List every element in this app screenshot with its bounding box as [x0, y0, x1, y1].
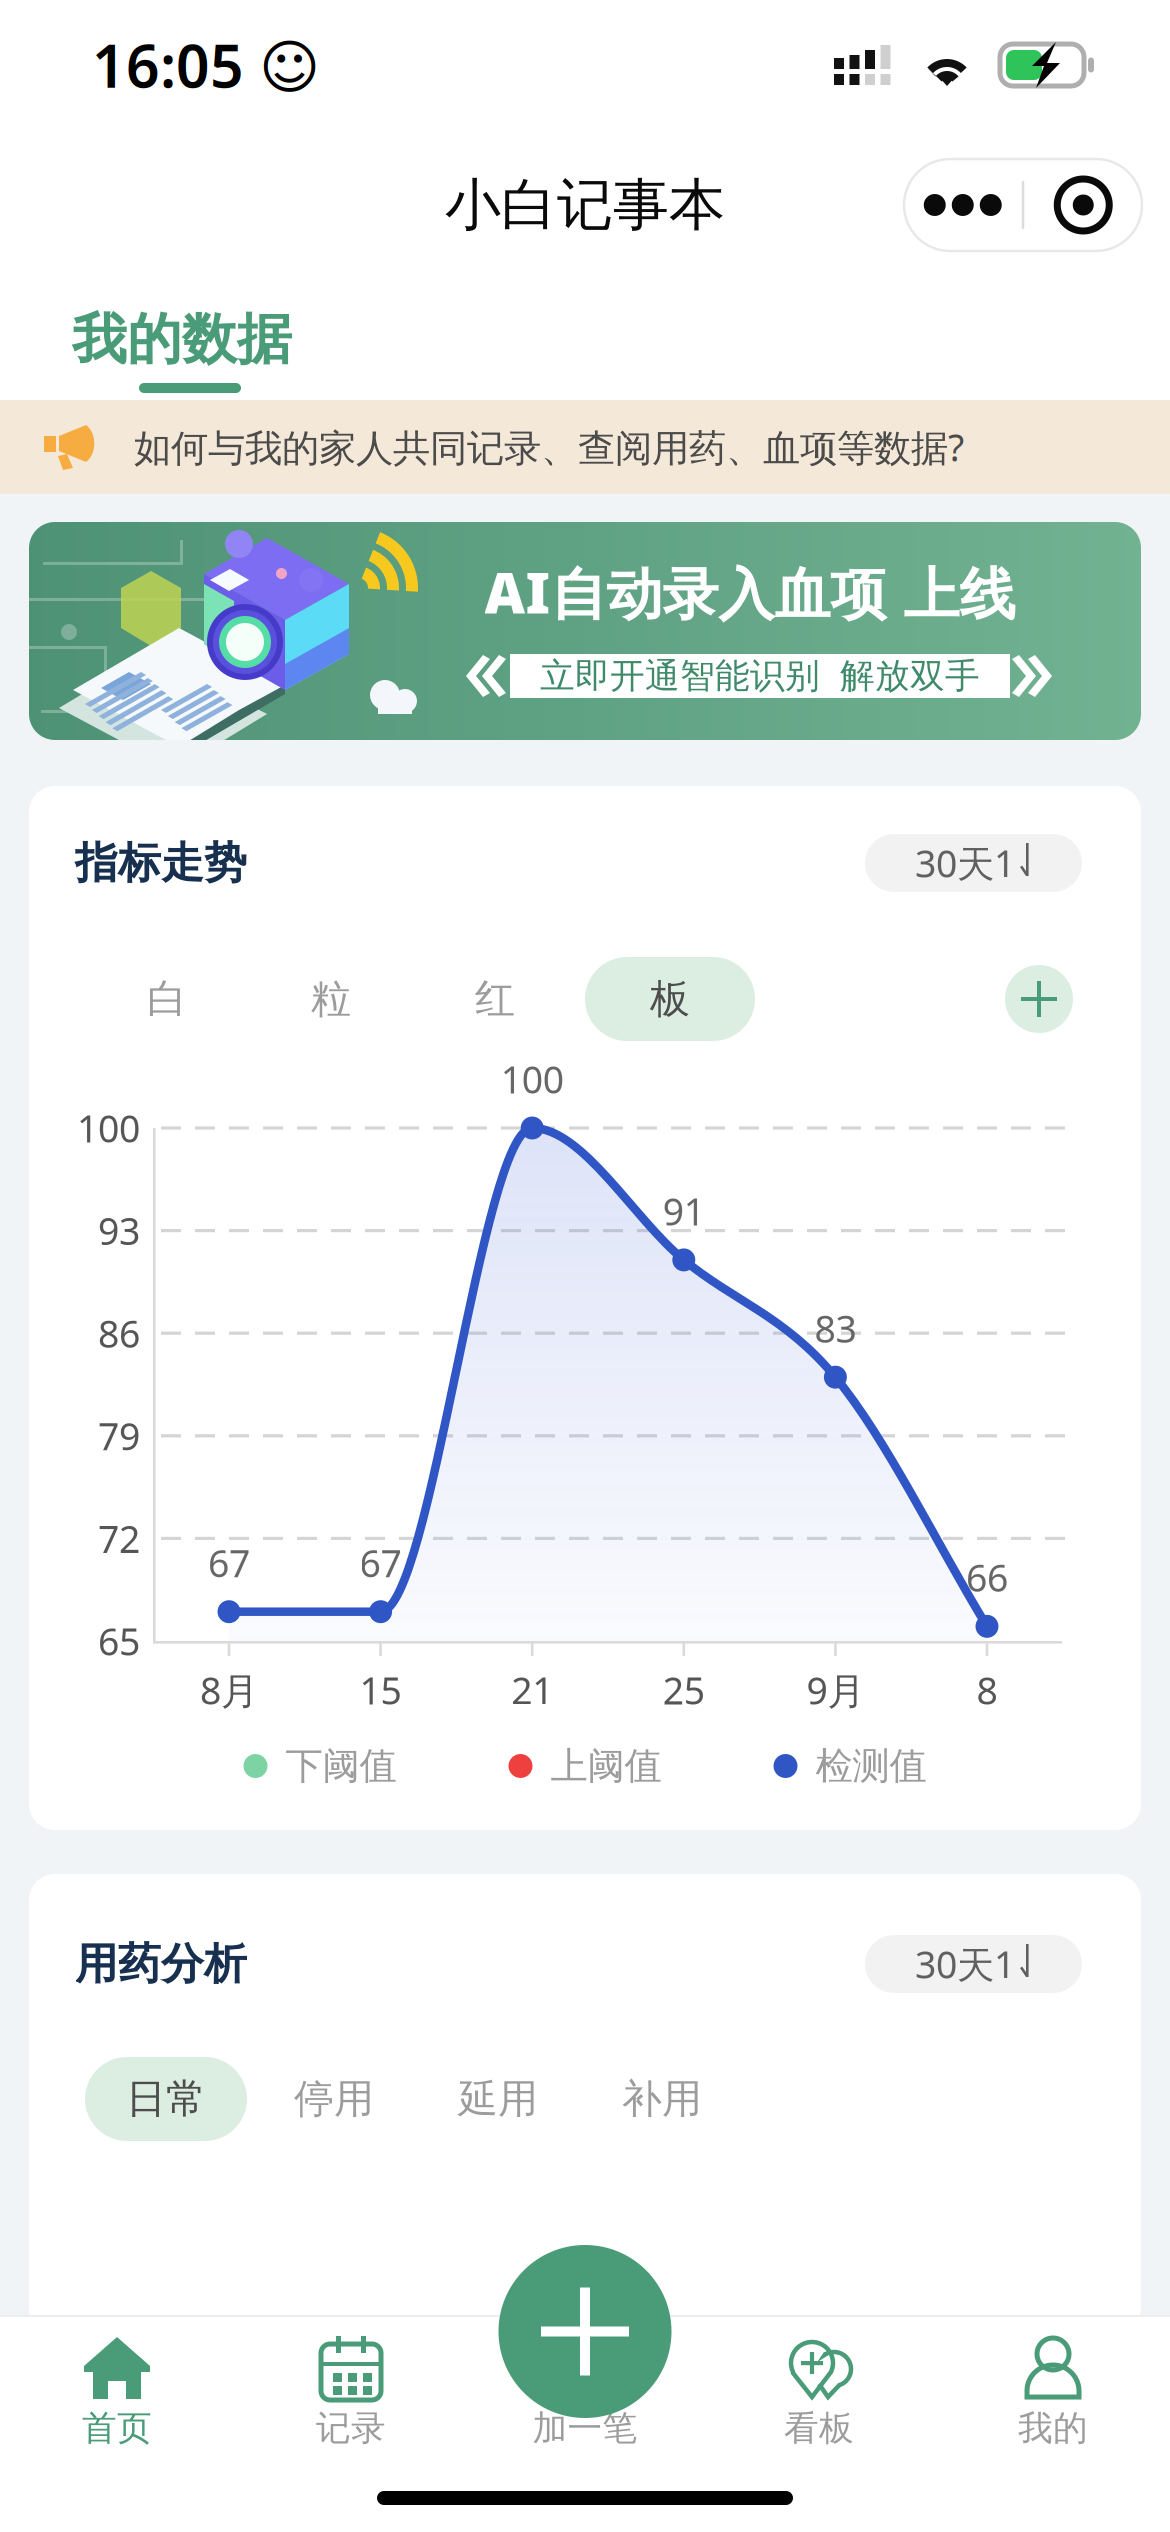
- staticText: 红: [475, 974, 515, 1023]
- staticText: 首页: [82, 2407, 152, 2450]
- staticText: 21: [511, 1665, 553, 1715]
- staticText: 指标走势: [75, 837, 247, 889]
- staticText: 小白记事本: [445, 171, 725, 239]
- staticText: 检测值: [815, 1743, 926, 1789]
- staticText: 下阈值: [285, 1743, 396, 1789]
- button[interactable]: 30天1: [865, 834, 1082, 892]
- staticText: 65: [98, 1616, 140, 1666]
- staticText: 100: [77, 1103, 140, 1153]
- staticText: 30天1: [915, 1939, 1015, 1989]
- button[interactable]: 补用: [621, 2057, 703, 2141]
- staticText: 延用: [458, 2074, 538, 2123]
- staticText: 8: [976, 1665, 997, 1715]
- staticText: 79: [98, 1411, 140, 1461]
- button[interactable]: AI自动录入血项 上线: [0, 522, 1170, 740]
- staticText: 72: [98, 1514, 140, 1563]
- button[interactable]: 延用: [457, 2057, 539, 2141]
- staticText: 86: [98, 1308, 140, 1358]
- staticText: 补用: [622, 2074, 702, 2123]
- staticText: 停用: [294, 2074, 374, 2123]
- button[interactable]: 30天1: [865, 1935, 1082, 1993]
- button[interactable]: Add entry: [498, 2245, 671, 2418]
- staticText: 25: [663, 1665, 705, 1715]
- staticText: 记录: [316, 2407, 386, 2450]
- staticText: 30天1: [915, 838, 1015, 888]
- staticText: 67: [208, 1538, 250, 1587]
- staticText: 粒: [311, 974, 351, 1023]
- button[interactable]: 红: [449, 957, 541, 1041]
- staticText: 板: [650, 974, 690, 1023]
- staticText: 9月: [806, 1665, 864, 1715]
- staticText: 加一笔: [532, 2407, 637, 2450]
- staticText: 16:05 ☺: [92, 26, 320, 104]
- staticText: 看板: [784, 2407, 854, 2450]
- staticText: 白: [147, 974, 187, 1023]
- staticText: 立即开通智能识别 解放双手: [540, 655, 980, 697]
- staticText: 上阈值: [550, 1743, 661, 1789]
- button[interactable]: 首页: [0, 2317, 234, 2487]
- staticText: 100: [501, 1054, 564, 1104]
- button[interactable]: Menu: [904, 159, 1142, 251]
- button[interactable]: 加一笔: [468, 2317, 702, 2487]
- button[interactable]: Add indicator: [1005, 965, 1073, 1033]
- staticText: 我的: [1018, 2407, 1088, 2450]
- button[interactable]: 粒: [285, 957, 377, 1041]
- staticText: 用药分析: [75, 1938, 247, 1990]
- button[interactable]: 如何与我的家人共同记录、查阅用药、血项等数据?: [0, 400, 1170, 494]
- staticText: 8月: [200, 1665, 258, 1715]
- button[interactable]: 我的: [936, 2317, 1170, 2487]
- staticText: 83: [814, 1303, 856, 1353]
- button[interactable]: 白: [121, 957, 213, 1041]
- button[interactable]: 停用: [293, 2057, 375, 2141]
- button[interactable]: 日常: [85, 2057, 247, 2141]
- staticText: 日常: [126, 2074, 206, 2123]
- staticText: 如何与我的家人共同记录、查阅用药、血项等数据?: [134, 422, 964, 472]
- staticText: 66: [966, 1553, 1008, 1602]
- button[interactable]: 板: [585, 957, 755, 1041]
- staticText: 15: [360, 1665, 402, 1715]
- staticText: 我的数据: [72, 306, 292, 373]
- staticText: 91: [663, 1186, 705, 1236]
- staticText: AI自动录入血项 上线: [484, 555, 1015, 629]
- button[interactable]: 看板: [702, 2317, 936, 2487]
- staticText: 93: [98, 1206, 140, 1255]
- button[interactable]: 记录: [234, 2317, 468, 2487]
- staticText: 67: [360, 1538, 402, 1587]
